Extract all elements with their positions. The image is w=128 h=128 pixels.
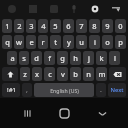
staticText: . <box>100 85 102 95</box>
button[interactable]: h <box>70 51 81 65</box>
button[interactable]: i <box>89 35 100 49</box>
staticText: o <box>105 37 110 47</box>
button[interactable]: 7 <box>76 19 87 33</box>
staticText: y <box>67 37 71 47</box>
staticText: s <box>22 53 26 63</box>
button[interactable]: 3 <box>26 19 36 33</box>
button[interactable]: Collapse keyboard <box>108 1 124 17</box>
staticText: q <box>5 37 10 47</box>
staticText: , <box>26 85 28 95</box>
button[interactable]: g <box>57 51 68 65</box>
button[interactable]: s <box>19 51 29 65</box>
button[interactable]: v <box>57 67 68 81</box>
button[interactable]: a <box>7 51 17 65</box>
button[interactable]: u <box>76 35 87 49</box>
staticText: Next <box>110 86 124 94</box>
staticText: t <box>54 37 57 47</box>
button[interactable]: Next <box>108 83 126 97</box>
button[interactable]: Settings <box>87 1 103 17</box>
staticText: b <box>73 69 78 79</box>
button[interactable]: z <box>20 67 30 81</box>
button[interactable]: Clipboard <box>46 1 62 17</box>
staticText: English (US) <box>50 87 79 94</box>
button[interactable]: Hide keyboard <box>91 102 113 124</box>
button[interactable]: 0 <box>115 19 126 33</box>
button[interactable]: t <box>50 35 61 49</box>
staticText: 8 <box>92 21 97 31</box>
staticText: 9 <box>105 21 110 31</box>
button[interactable]: q <box>2 35 12 49</box>
button[interactable]: 1 <box>2 19 12 33</box>
button[interactable]: Home <box>53 102 75 124</box>
staticText: 5 <box>53 21 58 31</box>
button[interactable]: Voice input <box>66 1 82 17</box>
staticText: 2 <box>17 21 22 31</box>
button[interactable]: y <box>63 35 74 49</box>
staticText: p <box>118 37 123 47</box>
staticText: 4 <box>41 21 46 31</box>
staticText: i <box>94 37 96 47</box>
button[interactable]: n <box>83 67 94 81</box>
button[interactable]: j <box>83 51 94 65</box>
button[interactable]: w <box>14 35 24 49</box>
button[interactable]: f <box>44 51 55 65</box>
staticText: j <box>88 53 90 63</box>
button[interactable]: p <box>115 35 126 49</box>
staticText: x <box>35 69 39 79</box>
button[interactable]: Shift <box>2 67 18 81</box>
button[interactable]: d <box>31 51 42 65</box>
staticText: 3 <box>29 21 34 31</box>
staticText: 7 <box>79 21 84 31</box>
staticText: d <box>34 53 39 63</box>
staticText: !#1 <box>7 86 16 94</box>
staticText: g <box>60 53 65 63</box>
button[interactable]: Backspace <box>109 67 126 81</box>
button[interactable]: x <box>32 67 42 81</box>
button[interactable]: r <box>38 35 48 49</box>
staticText: f <box>48 53 51 63</box>
staticText: v <box>61 69 65 79</box>
button[interactable]: l <box>109 51 120 65</box>
staticText: h <box>73 53 78 63</box>
button[interactable]: k <box>96 51 107 65</box>
staticText: c <box>48 69 52 79</box>
button[interactable]: o <box>102 35 113 49</box>
staticText: 6 <box>66 21 71 31</box>
button[interactable]: m <box>96 67 107 81</box>
button[interactable]: 8 <box>89 19 100 33</box>
button[interactable]: e <box>26 35 36 49</box>
button[interactable]: . <box>96 83 106 97</box>
staticText: l <box>114 53 116 63</box>
button[interactable]: 6 <box>63 19 74 33</box>
button[interactable]: 5 <box>50 19 61 33</box>
button[interactable]: 4 <box>38 19 48 33</box>
staticText: z <box>23 69 27 79</box>
staticText: 0 <box>118 21 123 31</box>
staticText: k <box>99 53 104 63</box>
staticText: 1 <box>5 21 10 31</box>
staticText: e <box>29 37 34 47</box>
staticText: u <box>79 37 84 47</box>
button[interactable]: b <box>70 67 81 81</box>
staticText: r <box>41 37 45 47</box>
button[interactable]: 9 <box>102 19 113 33</box>
button[interactable]: !#1 <box>2 83 20 97</box>
button[interactable]: , <box>22 83 32 97</box>
button[interactable]: 2 <box>14 19 24 33</box>
staticText: m <box>98 69 106 79</box>
button[interactable]: Stickers <box>25 1 41 17</box>
button[interactable]: Emoji <box>4 1 20 17</box>
button[interactable]: c <box>44 67 55 81</box>
staticText: a <box>10 53 15 63</box>
button[interactable]: English (US) <box>34 83 94 97</box>
button[interactable]: Recent apps <box>16 102 38 124</box>
staticText: w <box>16 37 22 47</box>
staticText: n <box>86 69 91 79</box>
